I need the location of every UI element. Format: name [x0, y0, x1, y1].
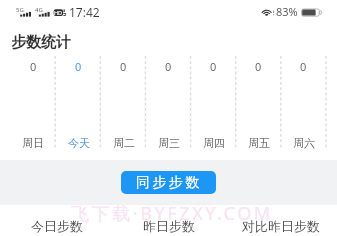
staticText: 周三	[158, 136, 180, 150]
staticText: 5G	[16, 6, 24, 14]
staticText: 0	[300, 59, 307, 74]
button[interactable]: 对比昨日步数	[225, 218, 337, 236]
staticText: 0	[165, 59, 172, 74]
staticText: 17:42	[69, 4, 100, 20]
staticText: 周五	[248, 136, 270, 150]
staticText: 周四	[203, 136, 225, 150]
button[interactable]: 同步步数	[121, 171, 216, 194]
staticText: 飞下载·BYFZXY.COM	[71, 201, 273, 226]
staticText: 周二	[113, 136, 135, 150]
staticText: 对比昨日步数	[242, 218, 320, 234]
staticText: 周日	[22, 136, 44, 150]
staticText: 周六	[293, 136, 315, 150]
staticText: 步数统计	[11, 33, 71, 52]
staticText: 4G	[35, 6, 43, 14]
staticText: 同步步数	[136, 174, 202, 192]
staticText: 0	[120, 59, 127, 74]
staticText: 0	[75, 59, 82, 74]
staticText: 0	[30, 59, 37, 74]
staticText: 今日步数	[31, 218, 83, 234]
staticText: 83%	[276, 4, 298, 19]
staticText: 0	[210, 59, 217, 74]
button[interactable]: 昨日步数	[113, 218, 225, 236]
staticText: 今天	[68, 136, 90, 150]
staticText: HD	[54, 9, 63, 16]
staticText: 0	[255, 59, 262, 74]
staticText: 昨日步数	[143, 218, 195, 234]
button[interactable]: 今日步数	[0, 218, 113, 236]
